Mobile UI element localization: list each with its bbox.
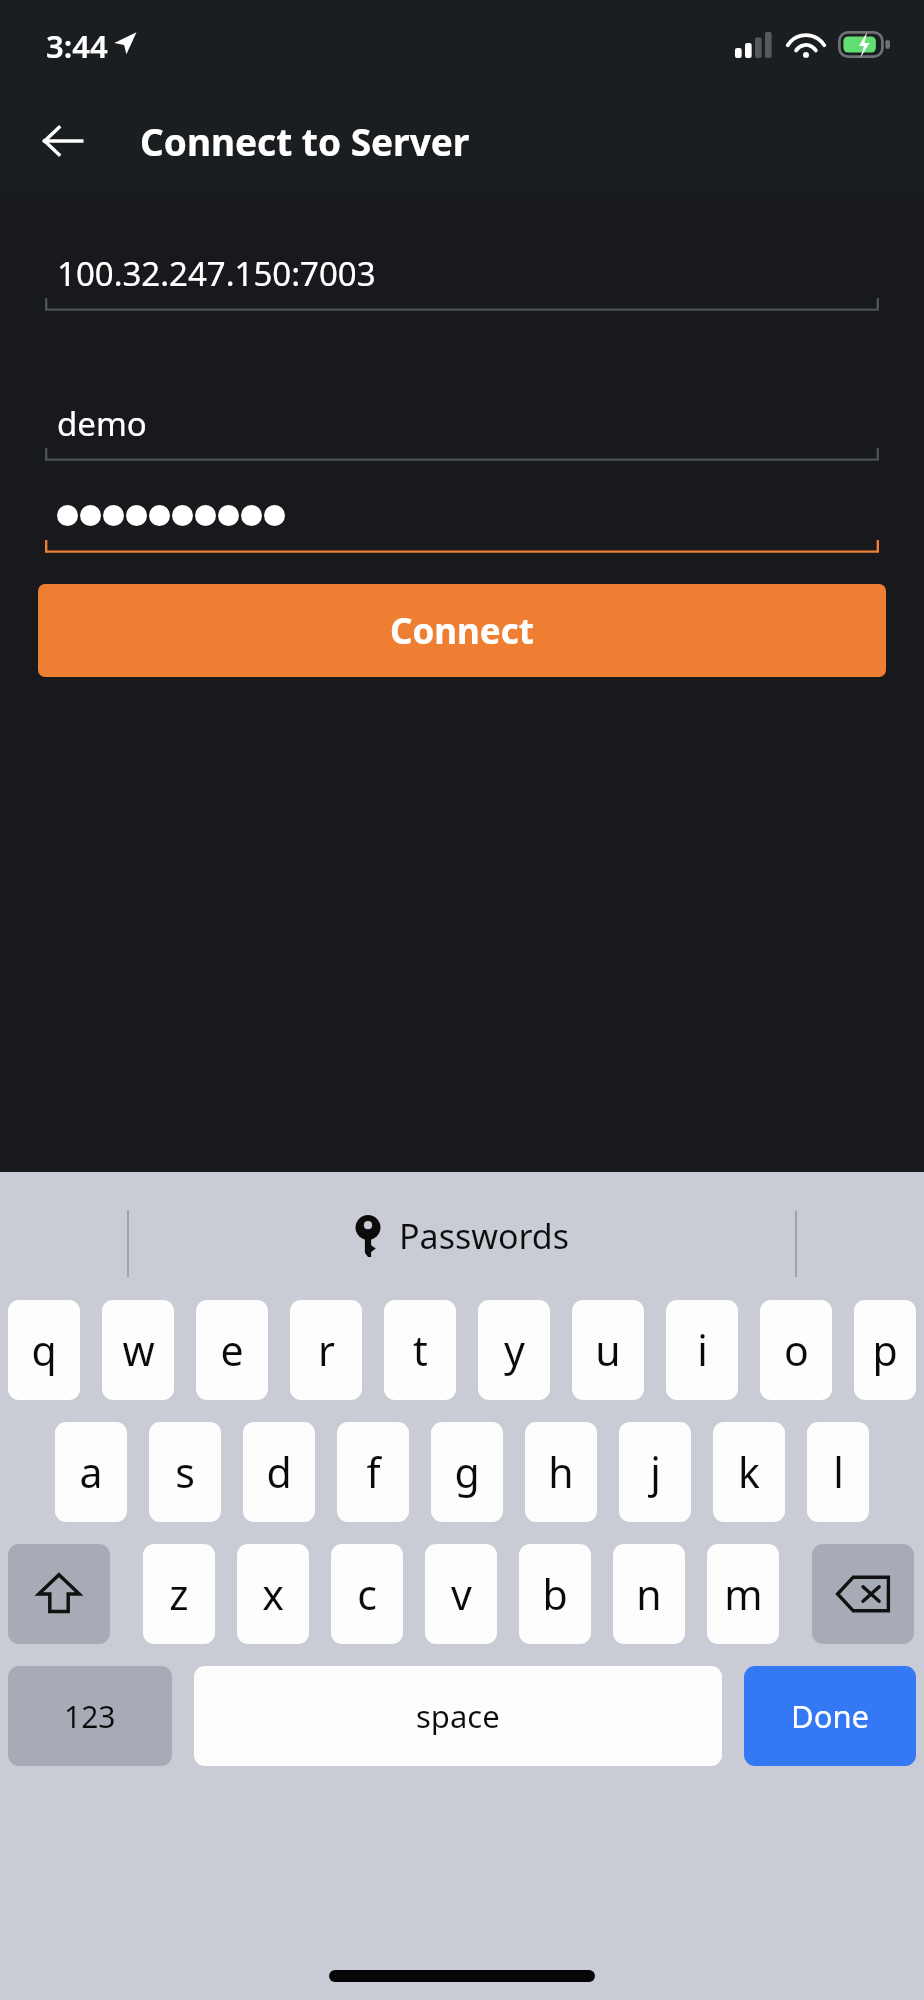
button[interactable]: p [854,1300,916,1400]
staticText: Done [791,1695,870,1737]
button[interactable]: j [619,1422,691,1522]
staticText: g [454,1444,480,1500]
staticText: j [650,1444,661,1500]
staticText: 123 [64,1696,116,1737]
staticText: e [220,1322,244,1378]
button[interactable]: i [666,1300,738,1400]
button[interactable]: a [55,1422,127,1522]
staticText: t [413,1322,428,1378]
staticText: b [542,1566,568,1622]
button[interactable]: m [707,1544,779,1644]
button[interactable] [45,490,879,554]
staticText: u [595,1322,621,1378]
button[interactable]: t [384,1300,456,1400]
button[interactable]: b [519,1544,591,1644]
button[interactable]: Back [30,108,96,174]
staticText: x [262,1566,284,1622]
button[interactable]: Shift [8,1544,110,1644]
button[interactable]: x [237,1544,309,1644]
staticText: h [548,1444,574,1500]
staticText: 100.32.247.150:7003 [57,251,376,296]
other: Backspace [836,1574,890,1614]
button[interactable]: o [760,1300,832,1400]
button[interactable]: s [149,1422,221,1522]
button[interactable]: c [331,1544,403,1644]
staticText: demo [57,401,147,446]
staticText: v [451,1566,472,1622]
button[interactable]: e [196,1300,268,1400]
staticText: z [169,1566,189,1622]
button[interactable]: space [194,1666,722,1766]
staticText: i [697,1322,708,1378]
staticText: d [266,1444,292,1500]
button[interactable]: v [425,1544,497,1644]
staticText: n [636,1566,662,1622]
button[interactable]: w [102,1300,174,1400]
button[interactable]: h [525,1422,597,1522]
staticText: y [504,1322,525,1378]
button[interactable]: demo [45,398,879,462]
button[interactable]: n [613,1544,685,1644]
button[interactable]: 100.32.247.150:7003 [45,248,879,312]
button[interactable]: z [143,1544,215,1644]
staticText: l [833,1444,844,1500]
staticText: p [872,1322,898,1378]
button[interactable]: u [572,1300,644,1400]
button[interactable]: 123 [8,1666,172,1766]
staticText: a [79,1444,103,1500]
button[interactable]: g [431,1422,503,1522]
staticText: Connect [390,607,534,655]
button[interactable]: q [8,1300,80,1400]
staticText: f [366,1444,381,1500]
staticText: m [724,1566,763,1622]
button[interactable]: Backspace [812,1544,914,1644]
staticText: q [31,1322,57,1378]
button[interactable]: Connect [38,584,886,677]
button[interactable]: l [807,1422,869,1522]
button[interactable]: r [290,1300,362,1400]
staticText: Connect to Server [140,116,470,166]
button[interactable]: k [713,1422,785,1522]
button[interactable]: Passwords [355,1213,570,1259]
staticText: Passwords [399,1213,570,1259]
staticText: r [318,1322,335,1378]
button[interactable]: y [478,1300,550,1400]
button[interactable]: d [243,1422,315,1522]
staticText: s [175,1444,195,1500]
staticText: space [416,1695,500,1737]
button[interactable]: f [337,1422,409,1522]
other: Shift [36,1571,82,1617]
staticText: w [122,1322,155,1378]
staticText: k [738,1444,760,1500]
button[interactable]: Done [744,1666,916,1766]
staticText: o [784,1322,809,1378]
staticText: 3:44 [46,25,108,67]
staticText: c [357,1566,377,1622]
